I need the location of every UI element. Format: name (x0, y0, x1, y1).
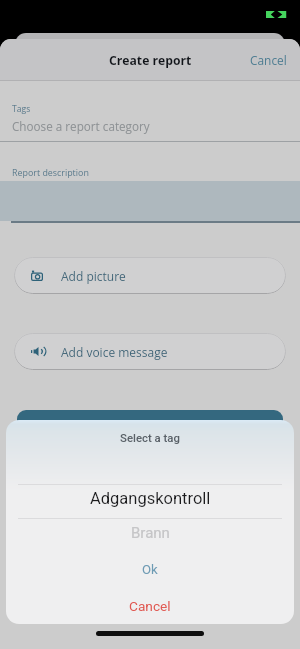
staticText: Select a tag (120, 431, 180, 444)
staticText: Add picture (61, 268, 126, 284)
staticText: Ok (142, 562, 158, 577)
other: Battery charging (266, 9, 288, 20)
staticText: Choose a report category (12, 118, 150, 134)
button[interactable] (17, 410, 283, 450)
staticText: Tags (12, 103, 31, 115)
button[interactable]: Cancel (6, 588, 294, 624)
button[interactable]: Add picture (14, 257, 286, 294)
staticText: Adgangskontroll (90, 489, 211, 508)
staticText: Cancel (129, 598, 171, 614)
staticText: Create report (109, 52, 192, 69)
button[interactable]: Choose a report category (12, 118, 150, 134)
staticText: Add voice message (61, 344, 168, 360)
staticText: Brann (131, 524, 170, 542)
button[interactable]: Add voice message (14, 333, 286, 370)
staticText: Report description (12, 166, 89, 178)
staticText: Cancel (250, 52, 287, 68)
button[interactable]: Cancel (237, 42, 300, 78)
button[interactable]: Ok (6, 551, 294, 587)
